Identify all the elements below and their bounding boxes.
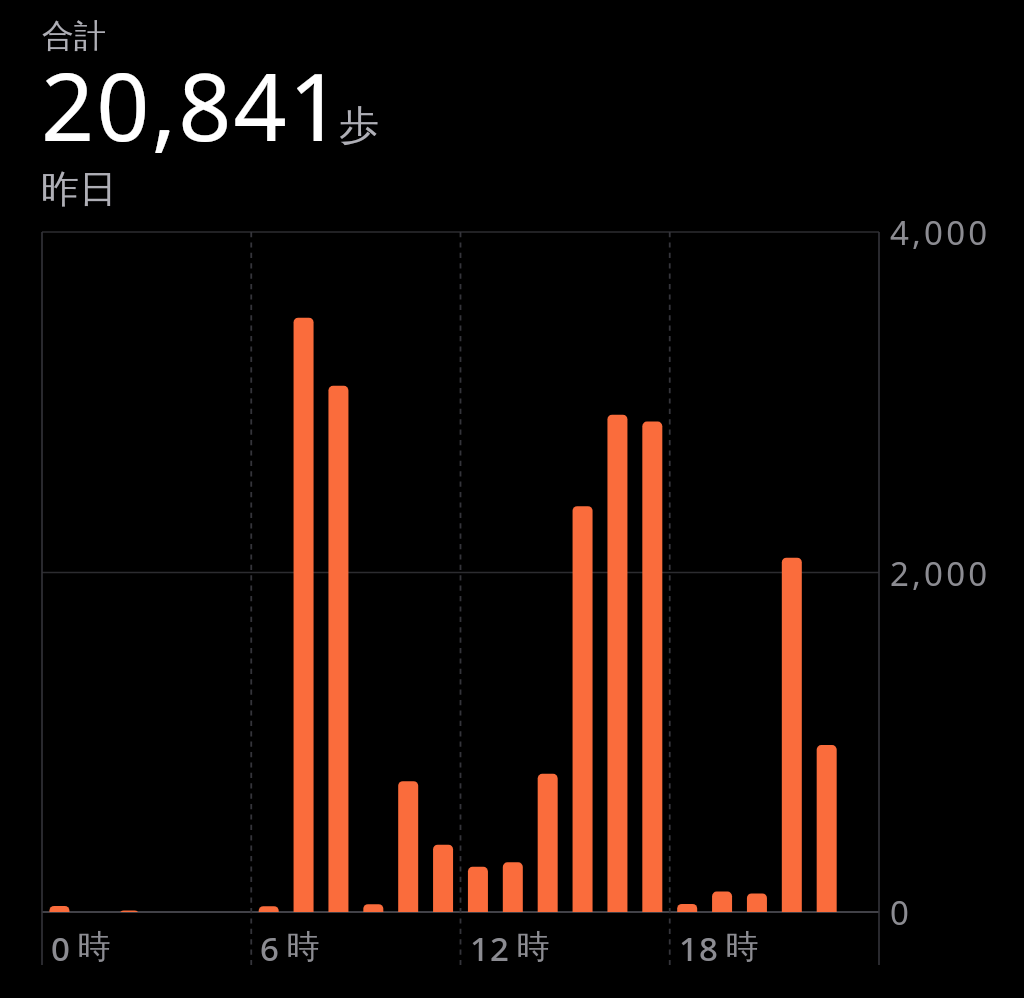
staticText: 時 <box>725 926 759 968</box>
staticText: 0 <box>51 926 71 971</box>
staticText: 時 <box>77 926 111 968</box>
staticText: 18 <box>679 926 719 971</box>
staticText: 20,841 <box>41 42 344 169</box>
staticText: 2,000 <box>890 551 991 596</box>
staticText: 0 <box>890 890 913 935</box>
staticText: 合計 <box>42 16 106 56</box>
staticText: 時 <box>516 926 550 968</box>
staticText: 時 <box>286 926 320 968</box>
staticText: 歩 <box>339 100 379 150</box>
button[interactable]: 合計 <box>24 8 444 208</box>
staticText: 昨日 <box>41 165 117 213</box>
staticText: 4,000 <box>890 210 991 255</box>
staticText: 6 <box>260 926 280 971</box>
staticText: 12 <box>470 926 510 971</box>
button[interactable]: 昨日の歩数グラフ <box>42 232 879 912</box>
